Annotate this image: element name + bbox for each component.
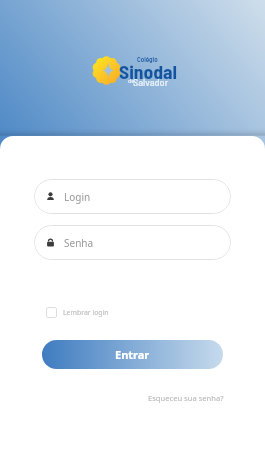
button[interactable]: Esqueceu sua senha? (146, 391, 226, 405)
staticText: Sinodal (119, 59, 178, 82)
button[interactable]: Entrar (42, 340, 223, 369)
staticText: Esqueceu sua senha? (148, 393, 224, 403)
staticText: Colégio (137, 55, 158, 63)
staticText: Entrar (115, 347, 150, 362)
button[interactable]: Senha (34, 225, 231, 260)
staticText: Login (64, 190, 91, 204)
button[interactable]: Lembrar login (34, 305, 117, 320)
staticText: Salvador (133, 76, 169, 88)
staticText: de (128, 76, 135, 84)
other: Colégio Sinodal de Salvador logo (92, 56, 121, 85)
button[interactable]: Login (34, 179, 231, 214)
staticText: Senha (64, 236, 94, 250)
staticText: Lembrar login (63, 308, 109, 317)
